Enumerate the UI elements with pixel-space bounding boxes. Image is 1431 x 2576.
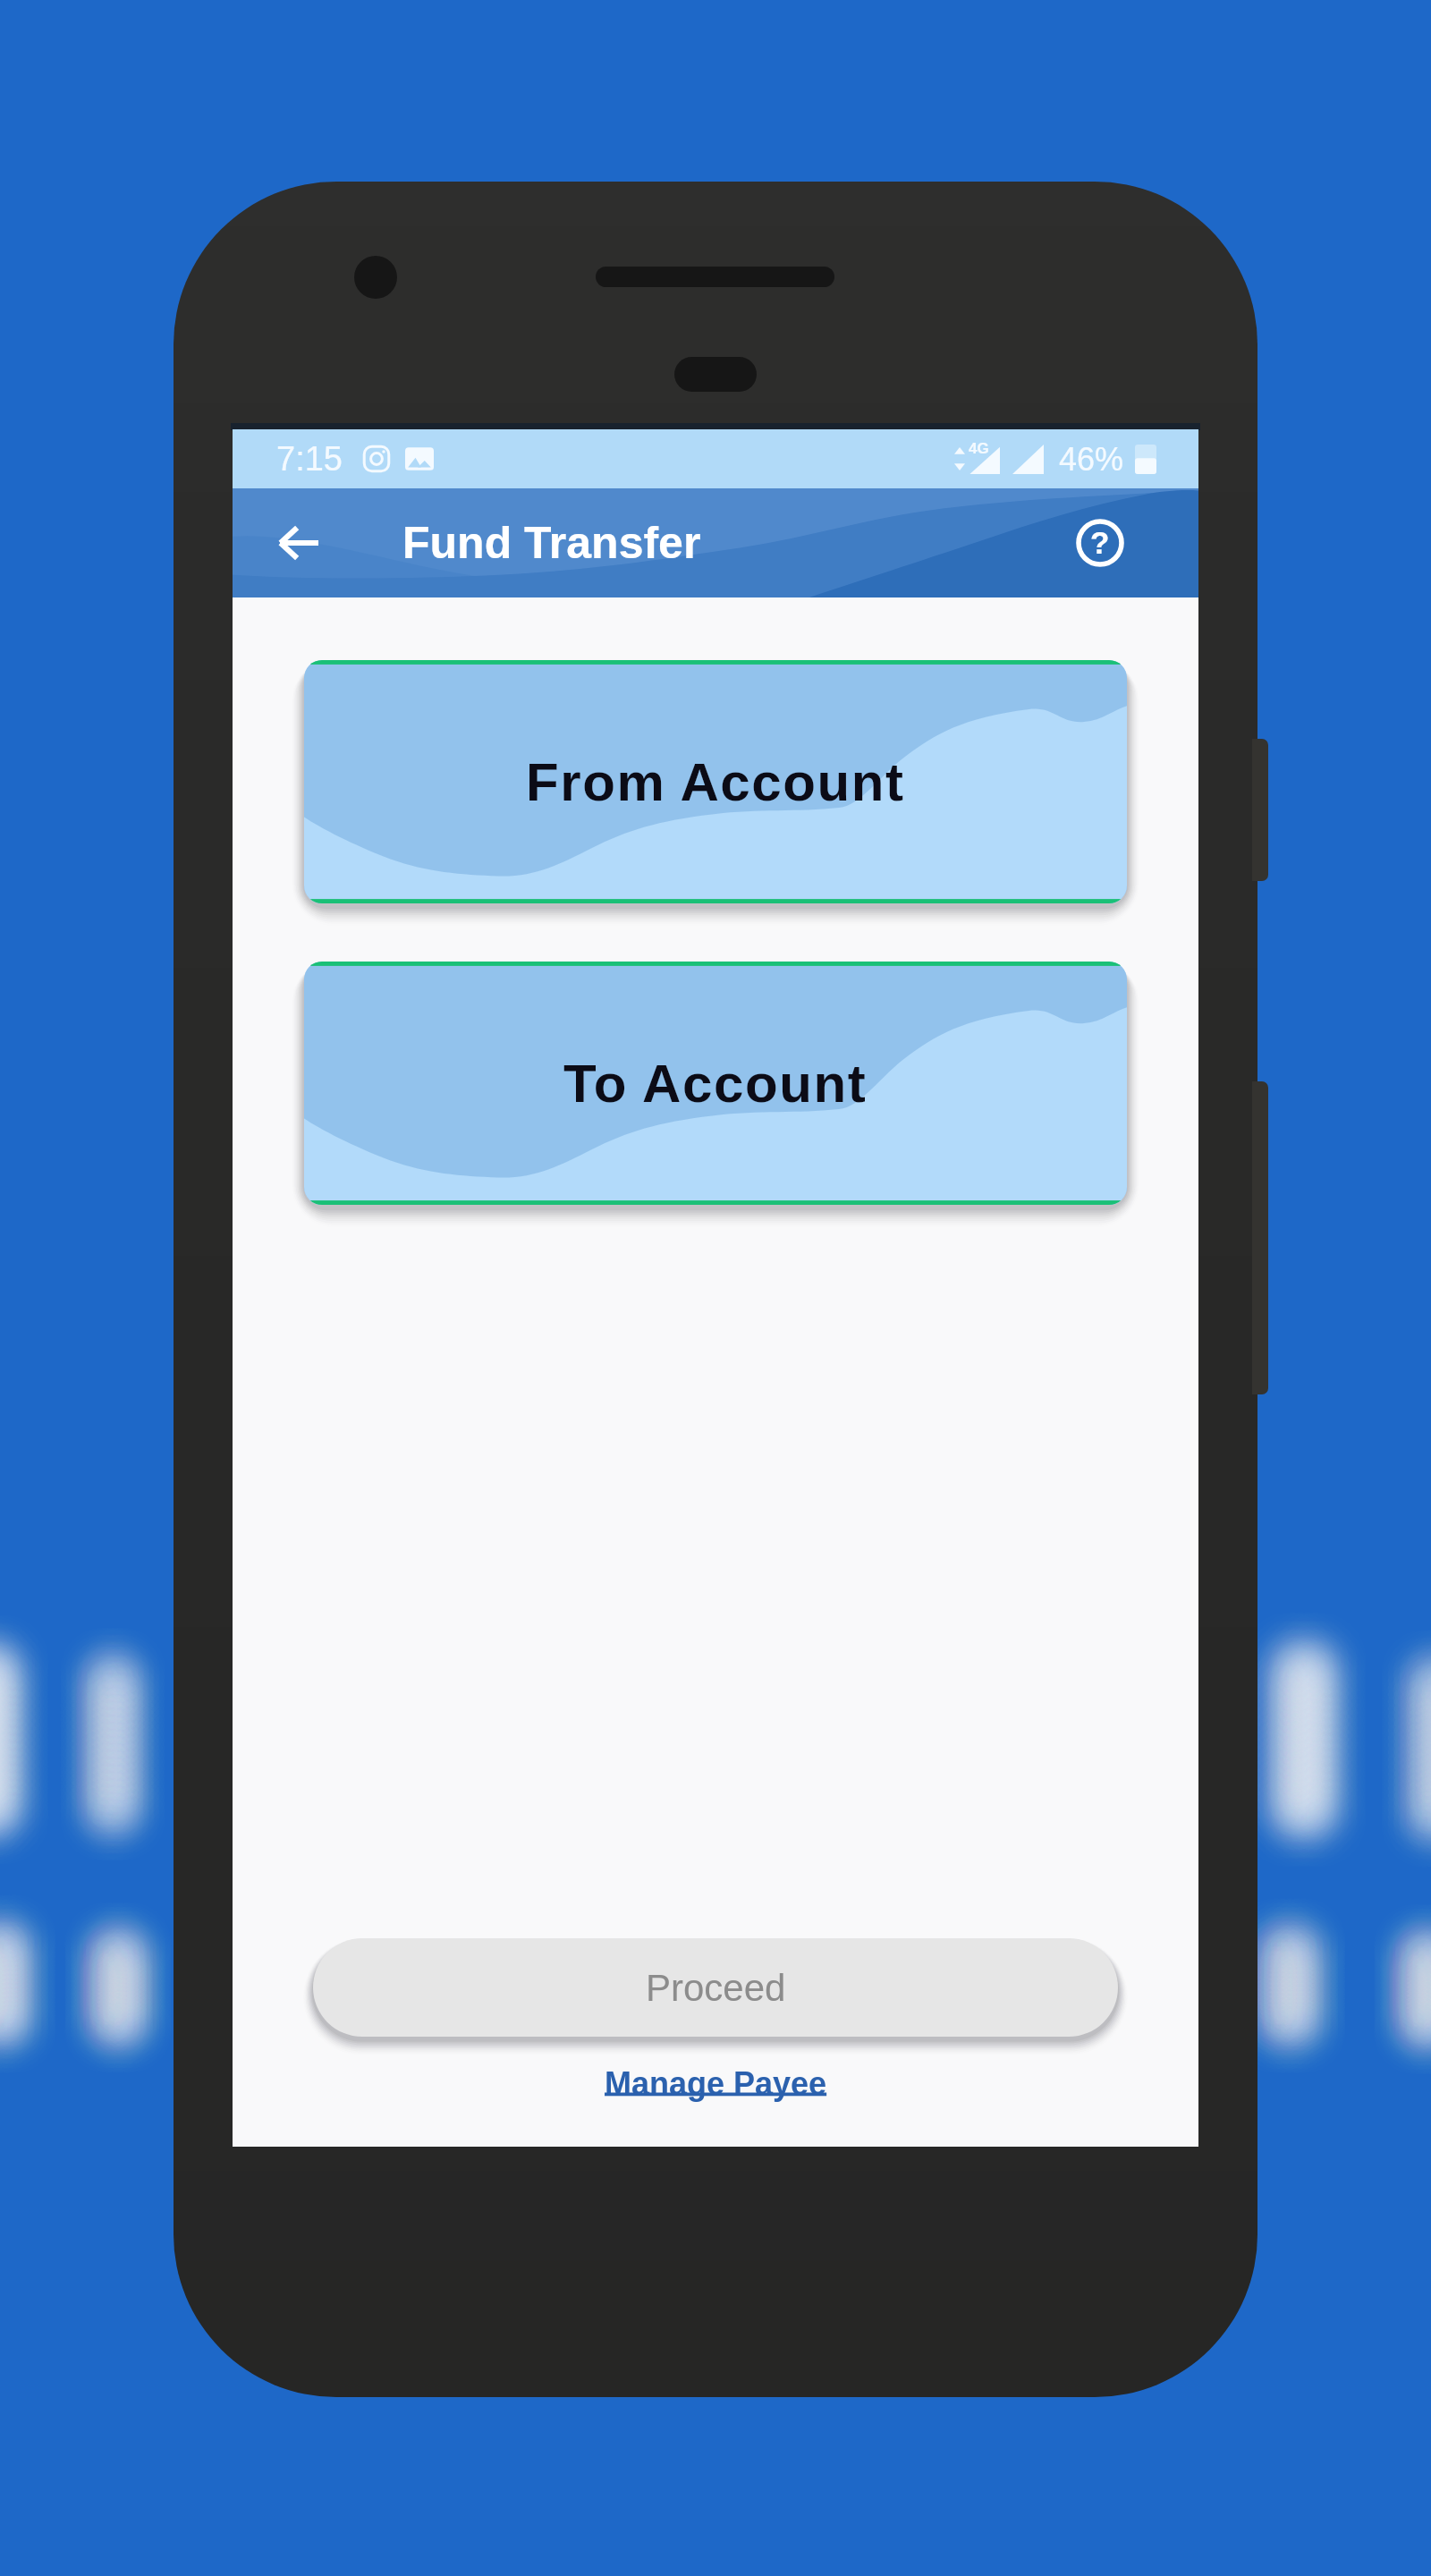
button[interactable]: Back <box>258 502 340 584</box>
button[interactable]: To Account <box>304 962 1127 1205</box>
button[interactable]: Proceed <box>313 1938 1118 2037</box>
staticText: 46% <box>1059 441 1124 477</box>
button[interactable]: Help <box>1059 502 1141 584</box>
staticText: 7:15 <box>276 440 343 478</box>
staticText: 4G <box>969 440 989 457</box>
staticText: Manage Payee <box>605 2065 827 2101</box>
staticText: ? <box>1090 525 1110 560</box>
staticText: Proceed <box>646 1967 786 2009</box>
staticText: From Account <box>526 752 905 812</box>
staticText: Fund Transfer <box>402 518 701 568</box>
button[interactable]: From Account <box>304 660 1127 903</box>
staticText: To Account <box>563 1054 868 1114</box>
button[interactable]: Manage Payee <box>592 2060 840 2106</box>
